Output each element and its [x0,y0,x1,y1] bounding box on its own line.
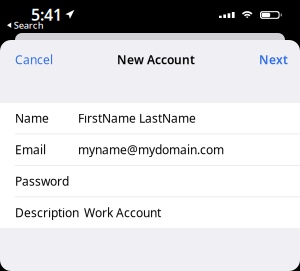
staticText: Password [15,173,69,189]
staticText: New Account [117,51,195,67]
button[interactable]: Next [259,51,288,67]
button[interactable]: Name [0,103,300,133]
staticText: Next [259,51,288,67]
button[interactable]: Cancel [15,51,53,67]
button[interactable]: Password [0,166,300,196]
staticText: Work Account [84,205,161,220]
staticText: myname@mydomain.com [78,142,224,157]
button[interactable]: Description [0,197,300,228]
staticText: Email [15,142,46,157]
button[interactable]: Email [0,134,300,165]
staticText: Name [15,110,49,126]
staticText: FirstName LastName [78,110,196,126]
staticText: Cancel [15,51,53,67]
staticText: 5:41 [31,4,62,25]
staticText: Search [14,19,44,31]
button[interactable]: Search [0,0,44,31]
staticText: Description [15,205,79,220]
